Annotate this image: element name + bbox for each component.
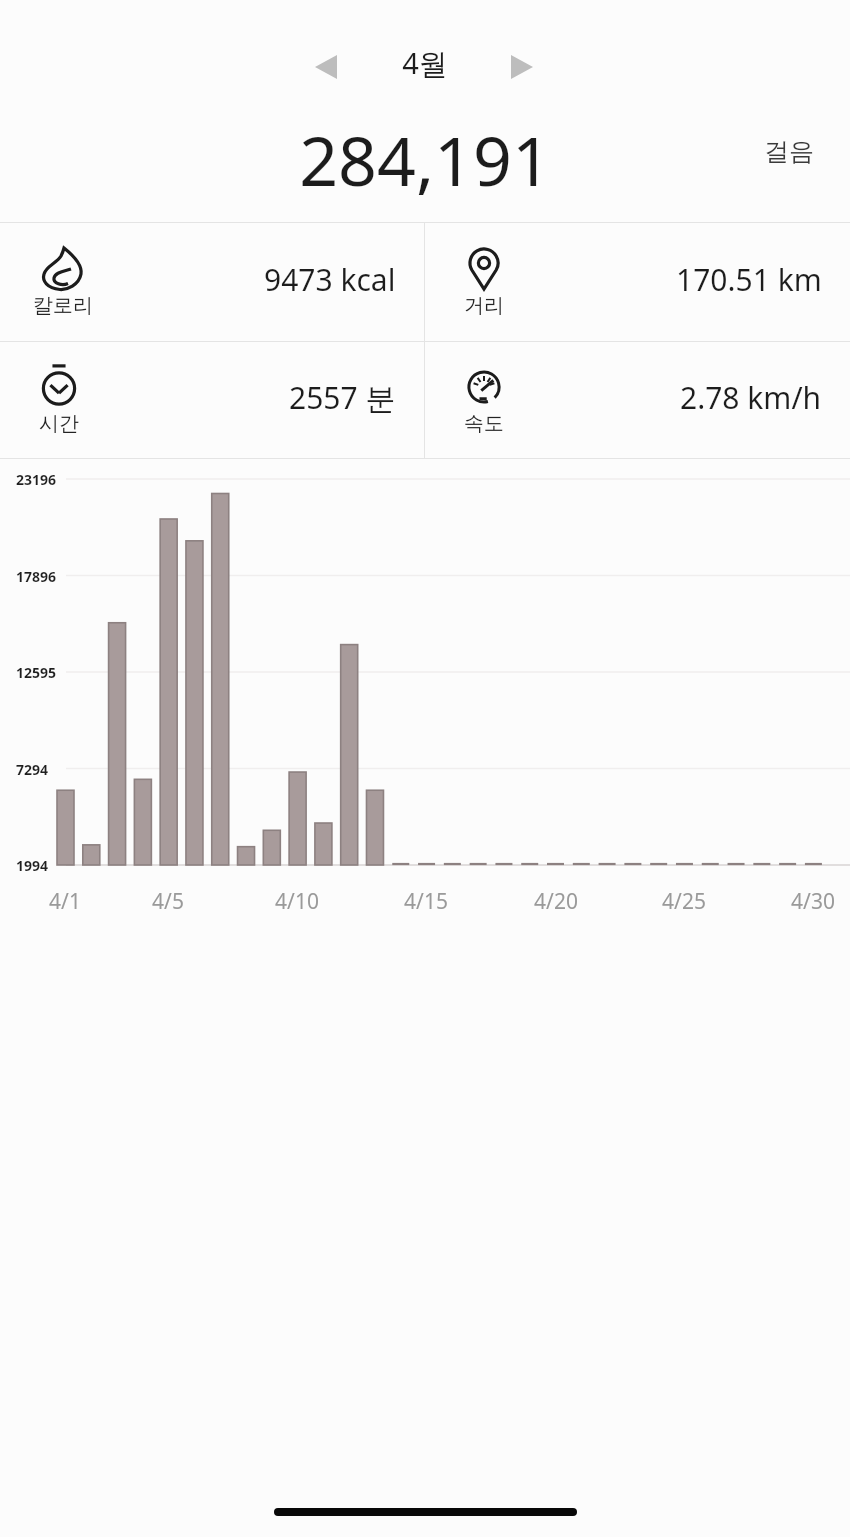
staticText: 9473 kcal bbox=[264, 259, 396, 300]
staticText: 4/15 bbox=[386, 887, 466, 916]
staticText: 284,191 bbox=[0, 113, 850, 206]
staticText: 4/20 bbox=[516, 887, 596, 916]
button[interactable]: Next month bbox=[496, 42, 548, 92]
staticText: 4/1 bbox=[25, 887, 105, 916]
staticText: 17896 bbox=[16, 567, 57, 586]
staticText: 거리 bbox=[464, 293, 504, 318]
staticText: 170.51 km bbox=[676, 259, 822, 300]
staticText: 2557 분 bbox=[289, 377, 396, 418]
staticText: 4월 bbox=[0, 43, 850, 83]
button[interactable]: 거리 bbox=[425, 223, 850, 341]
staticText: 2.78 km/h bbox=[680, 377, 822, 418]
button[interactable]: 시간 bbox=[0, 342, 424, 458]
staticText: 23196 bbox=[16, 470, 57, 489]
staticText: 4/25 bbox=[644, 887, 724, 916]
staticText: 4/30 bbox=[773, 887, 850, 916]
staticText: 걸음 bbox=[764, 136, 814, 167]
staticText: 7294 bbox=[16, 760, 49, 779]
staticText: 4/5 bbox=[128, 887, 208, 916]
button[interactable]: Previous month bbox=[300, 42, 352, 92]
staticText: 칼로리 bbox=[33, 293, 93, 318]
staticText: 4/10 bbox=[257, 887, 337, 916]
button[interactable]: 칼로리 bbox=[0, 223, 424, 341]
button[interactable]: 속도 bbox=[425, 342, 850, 458]
staticText: 속도 bbox=[464, 411, 504, 436]
staticText: 12595 bbox=[16, 663, 57, 682]
staticText: 시간 bbox=[39, 411, 79, 436]
staticText: 1994 bbox=[16, 856, 49, 875]
